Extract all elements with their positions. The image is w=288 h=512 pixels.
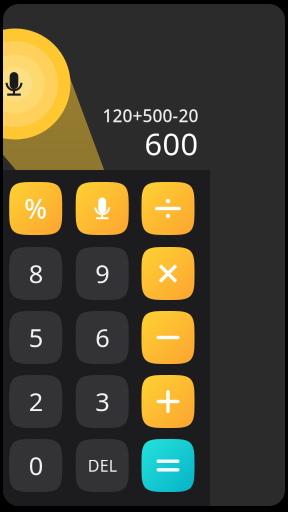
staticText: 120+500-20: [102, 104, 198, 127]
button[interactable]: Multiply: [141, 247, 194, 300]
staticText: 9: [95, 257, 109, 290]
button[interactable]: Percent: [9, 182, 62, 235]
button[interactable]: Divide: [141, 182, 194, 235]
button[interactable]: 2: [9, 375, 62, 428]
button[interactable]: Voice input: [0, 62, 36, 106]
staticText: 5: [29, 321, 43, 354]
staticText: DEL: [88, 455, 117, 476]
button[interactable]: Minus: [141, 311, 194, 364]
button[interactable]: 3: [76, 375, 129, 428]
button[interactable]: Voice input: [76, 182, 129, 235]
staticText: 0: [29, 449, 43, 482]
staticText: 8: [29, 257, 43, 290]
button[interactable]: 0: [9, 439, 62, 492]
staticText: 6: [95, 321, 109, 354]
button[interactable]: 8: [9, 247, 62, 300]
staticText: %: [24, 191, 47, 226]
staticText: 600: [144, 123, 198, 164]
button[interactable]: 6: [76, 311, 129, 364]
button[interactable]: DEL: [76, 439, 129, 492]
staticText: 3: [95, 385, 109, 418]
button[interactable]: 9: [76, 247, 129, 300]
button[interactable]: 5: [9, 311, 62, 364]
button[interactable]: Equals: [141, 439, 194, 492]
staticText: 2: [29, 385, 43, 418]
button[interactable]: Plus: [141, 375, 194, 428]
